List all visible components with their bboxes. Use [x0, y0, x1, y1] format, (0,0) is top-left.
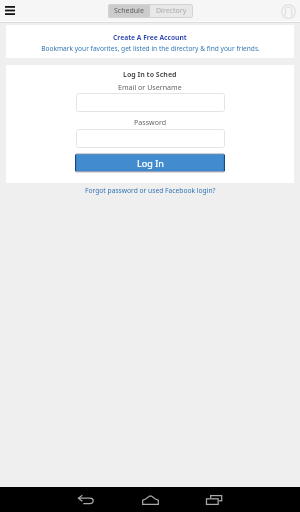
staticText: Forgot password or used Facebook login?	[85, 186, 216, 195]
button[interactable]: Menu	[0, 1, 19, 20]
staticText: Create A Free Account	[113, 33, 187, 42]
button[interactable]: Log In	[75, 153, 225, 173]
button[interactable]: Recents	[192, 490, 236, 509]
button[interactable]: Create A Free Account	[6, 25, 294, 58]
staticText: Bookmark your favorites, get listed in t…	[41, 44, 260, 53]
button[interactable]: Schedule	[108, 4, 150, 18]
button[interactable]: Password	[76, 129, 225, 148]
staticText: Password	[134, 117, 167, 127]
staticText: Email or Username	[118, 82, 182, 92]
staticText: Log In	[137, 157, 164, 169]
button[interactable]: Profile	[278, 1, 298, 21]
button[interactable]: Email or Username	[76, 93, 225, 112]
button[interactable]: Forgot password or used Facebook login?	[79, 184, 222, 197]
staticText: Log In to Sched	[123, 70, 177, 80]
staticText: Directory	[156, 6, 187, 16]
button[interactable]: Directory	[150, 4, 193, 18]
button[interactable]: Home	[128, 490, 172, 509]
staticText: Schedule	[114, 6, 144, 16]
button[interactable]: Back	[64, 490, 108, 509]
